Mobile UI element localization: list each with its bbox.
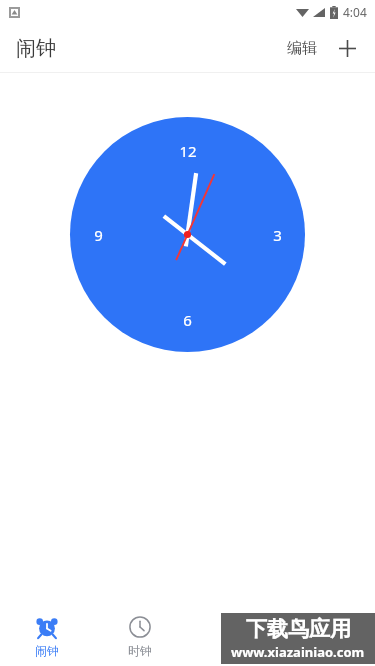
staticText: 9: [94, 225, 103, 245]
staticText: 12: [179, 141, 197, 161]
button[interactable]: 秒表: [281, 607, 375, 666]
button[interactable]: 时钟: [93, 607, 187, 666]
staticText: 3: [273, 225, 282, 245]
staticText: 秒表: [316, 643, 340, 658]
button[interactable]: 编辑: [281, 31, 323, 66]
staticText: 时钟: [128, 643, 152, 658]
staticText: 闹钟: [35, 643, 59, 658]
staticText: www.xiazainiao.com: [231, 643, 365, 661]
button[interactable]: 闹钟: [0, 607, 93, 666]
staticText: 4:04: [343, 4, 367, 20]
staticText: 闹钟: [16, 36, 56, 61]
staticText: 下载鸟应用: [246, 616, 351, 642]
button[interactable]: Add alarm: [329, 30, 365, 66]
staticText: 编辑: [287, 39, 317, 58]
staticText: 计时: [222, 643, 246, 658]
button[interactable]: 计时: [187, 607, 281, 666]
staticText: 6: [183, 310, 192, 330]
